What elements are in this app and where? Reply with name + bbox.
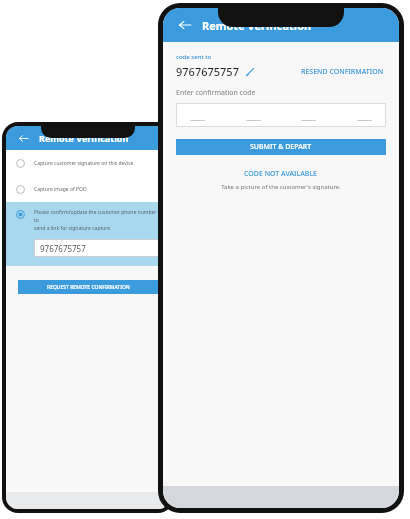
staticText: Please confirm/update the customer phone… (34, 209, 160, 232)
button[interactable]: Back (14, 129, 33, 148)
button[interactable]: Edit phone number (244, 66, 255, 77)
button[interactable]: SUBMIT & DEPART (176, 139, 386, 155)
staticText: REQUEST REMOTE CONFIRMATION (47, 284, 130, 291)
staticText: code sent to (176, 53, 212, 61)
staticText: CODE NOT AVAILABLE (244, 169, 318, 179)
button[interactable]: 9767675757 (34, 239, 160, 257)
staticText: Capture image of POD (34, 186, 87, 193)
button[interactable]: Back (174, 14, 196, 36)
staticText: Capture customer signature on this devic… (34, 160, 134, 167)
staticText: Take a picture of the customer's signatu… (176, 183, 386, 191)
staticText: Enter confirmation code (176, 88, 256, 98)
button[interactable]: REQUEST REMOTE CONFIRMATION (18, 280, 158, 294)
button[interactable]: CODE NOT AVAILABLE (176, 169, 386, 179)
staticText: SUBMIT & DEPART (250, 142, 312, 152)
button[interactable] (176, 103, 386, 127)
button[interactable]: Capture customer signature on this devic… (6, 150, 170, 176)
staticText: 9767675757 (176, 64, 239, 79)
button[interactable]: Please confirm/update the customer phone… (6, 202, 170, 266)
staticText: 9767675757 (40, 243, 86, 254)
button[interactable]: RESEND CONFIRMATION (299, 65, 386, 79)
staticText: RESEND CONFIRMATION (301, 67, 384, 77)
button[interactable]: Capture image of POD (6, 176, 170, 202)
staticText: Remote Verification (202, 18, 312, 33)
staticText: Remote Verification (39, 132, 129, 144)
